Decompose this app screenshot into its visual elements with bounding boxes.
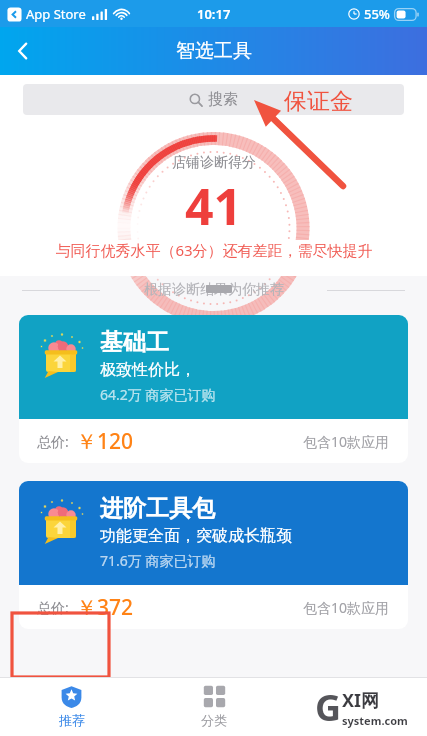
staticText: ￥372 — [76, 593, 134, 622]
staticText: 41 — [185, 172, 243, 240]
staticText: App Store — [26, 5, 86, 23]
button[interactable]: 进阶工具包 — [19, 481, 408, 629]
staticText: 总价: — [37, 598, 69, 617]
staticText: ￥120 — [76, 427, 134, 456]
staticText: 店铺诊断得分 — [172, 154, 256, 172]
staticText: XI网 — [342, 688, 380, 713]
staticText: 搜索 — [208, 90, 238, 109]
button[interactable]: 基础工 — [19, 315, 408, 463]
staticText: 64.2万 商家已订购 — [100, 385, 216, 404]
staticText: 包含10款应用 — [303, 598, 390, 617]
staticText: 基础工 — [100, 328, 169, 357]
staticText: 总价: — [37, 432, 69, 451]
staticText: system.com — [342, 713, 408, 728]
staticText: 智选工具 — [176, 39, 252, 63]
button[interactable]: Back — [0, 28, 46, 74]
staticText: G — [315, 683, 342, 732]
staticText: 根据诊断结果为你推荐 — [144, 281, 284, 299]
button[interactable]: 分类 — [143, 677, 285, 736]
staticText: 功能更全面，突破成长瓶颈 — [100, 526, 292, 546]
staticText: 进阶工具包 — [100, 494, 215, 523]
staticText: 与同行优秀水平（63分）还有差距，需尽快提升 — [55, 240, 373, 260]
staticText: 包含10款应用 — [303, 432, 390, 451]
staticText: 保证金 — [284, 87, 353, 116]
staticText: 55% — [364, 5, 390, 23]
staticText: 10:17 — [197, 5, 231, 23]
button[interactable]: 推荐 — [0, 677, 143, 736]
staticText: 推荐 — [59, 712, 85, 728]
button[interactable]: 搜索 — [23, 84, 404, 115]
staticText: 分类 — [201, 712, 227, 728]
staticText: 71.6万 商家已订购 — [100, 551, 216, 570]
staticText: 极致性价比， — [100, 360, 196, 380]
